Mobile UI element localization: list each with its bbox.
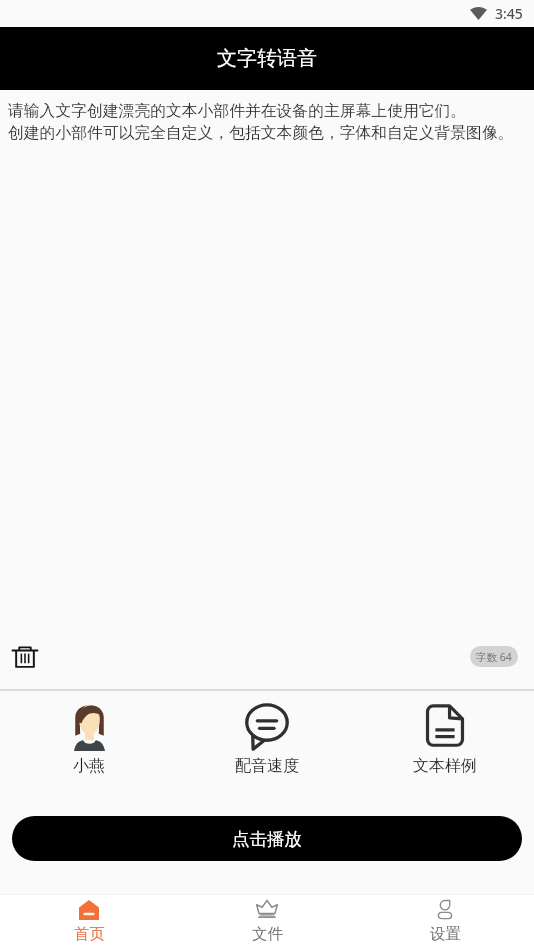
staticText: 文本样例 [413, 756, 477, 776]
staticText: 点击播放 [232, 828, 302, 850]
staticText: 3:45 [495, 4, 523, 23]
staticText: 文件 [252, 924, 283, 944]
button[interactable]: 小燕 [0, 691, 178, 788]
staticText: 配音速度 [235, 756, 299, 776]
staticText: 设置 [430, 924, 461, 944]
button[interactable]: 点击播放 [12, 816, 522, 861]
button[interactable]: 配音速度 [178, 691, 356, 788]
button[interactable]: 文件 [178, 895, 356, 949]
staticText: 字数 64 [476, 650, 512, 664]
staticText: 小燕 [73, 756, 105, 776]
button[interactable]: 文本样例 [356, 691, 534, 788]
staticText: 首页 [74, 924, 105, 944]
button[interactable]: 设置 [356, 895, 534, 949]
staticText: 文字转语音 [217, 46, 317, 71]
staticText: 请输入文字创建漂亮的文本小部件并在设备的主屏幕上使用它们。 创建的小部件可以完全… [8, 101, 514, 143]
button[interactable]: 首页 [0, 895, 178, 949]
button[interactable]: Delete [2, 634, 48, 679]
